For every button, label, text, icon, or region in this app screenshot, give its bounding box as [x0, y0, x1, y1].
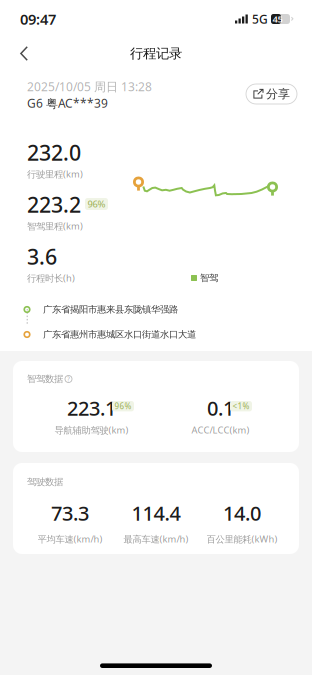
staticText: 73.3 [51, 500, 89, 526]
staticText: 广东省惠州市惠城区水口街道水口大道 [43, 329, 196, 340]
staticText: 驾驶数据 [27, 476, 63, 488]
staticText: 分享 [266, 87, 290, 101]
staticText: 96% [114, 401, 131, 411]
staticText: 行程记录 [130, 45, 182, 62]
staticText: 行程时长(h) [27, 272, 75, 284]
staticText: 96% [87, 198, 105, 210]
staticText: 智驾里程(km) [27, 220, 83, 232]
staticText: 09:47 [20, 9, 56, 29]
staticText: 智驾数据 [27, 373, 63, 385]
staticText: 114.4 [131, 500, 180, 526]
staticText: G6 粤AC***39 [27, 95, 108, 111]
staticText: 232.0 [27, 138, 81, 167]
staticText: 广东省揭阳市惠来县东陇镇华强路 [43, 304, 178, 315]
staticText: 14.0 [223, 500, 261, 526]
staticText: 导航辅助驾驶(km) [54, 424, 128, 436]
staticText: 行驶里程(km) [27, 168, 83, 180]
staticText: 百公里能耗(kWh) [206, 533, 277, 545]
staticText: 223.2 [27, 190, 81, 219]
staticText: 0.1 [207, 395, 234, 421]
button[interactable]: 分享 [246, 84, 297, 104]
staticText: 5G [252, 11, 268, 27]
staticText: ACC/LCC(km) [191, 424, 249, 436]
staticText: 平均车速(km/h) [37, 533, 102, 545]
staticText: ? [67, 375, 70, 383]
staticText: 最高车速(km/h) [123, 533, 188, 545]
staticText: 3.6 [27, 242, 57, 271]
staticText: 2025/10/05 周日 13:28 [27, 78, 152, 94]
staticText: 45 [272, 13, 282, 25]
staticText: 智驾 [200, 272, 218, 284]
staticText: 223.1 [67, 395, 116, 421]
staticText: <1% [232, 401, 249, 411]
button[interactable]: Back [8, 38, 40, 69]
